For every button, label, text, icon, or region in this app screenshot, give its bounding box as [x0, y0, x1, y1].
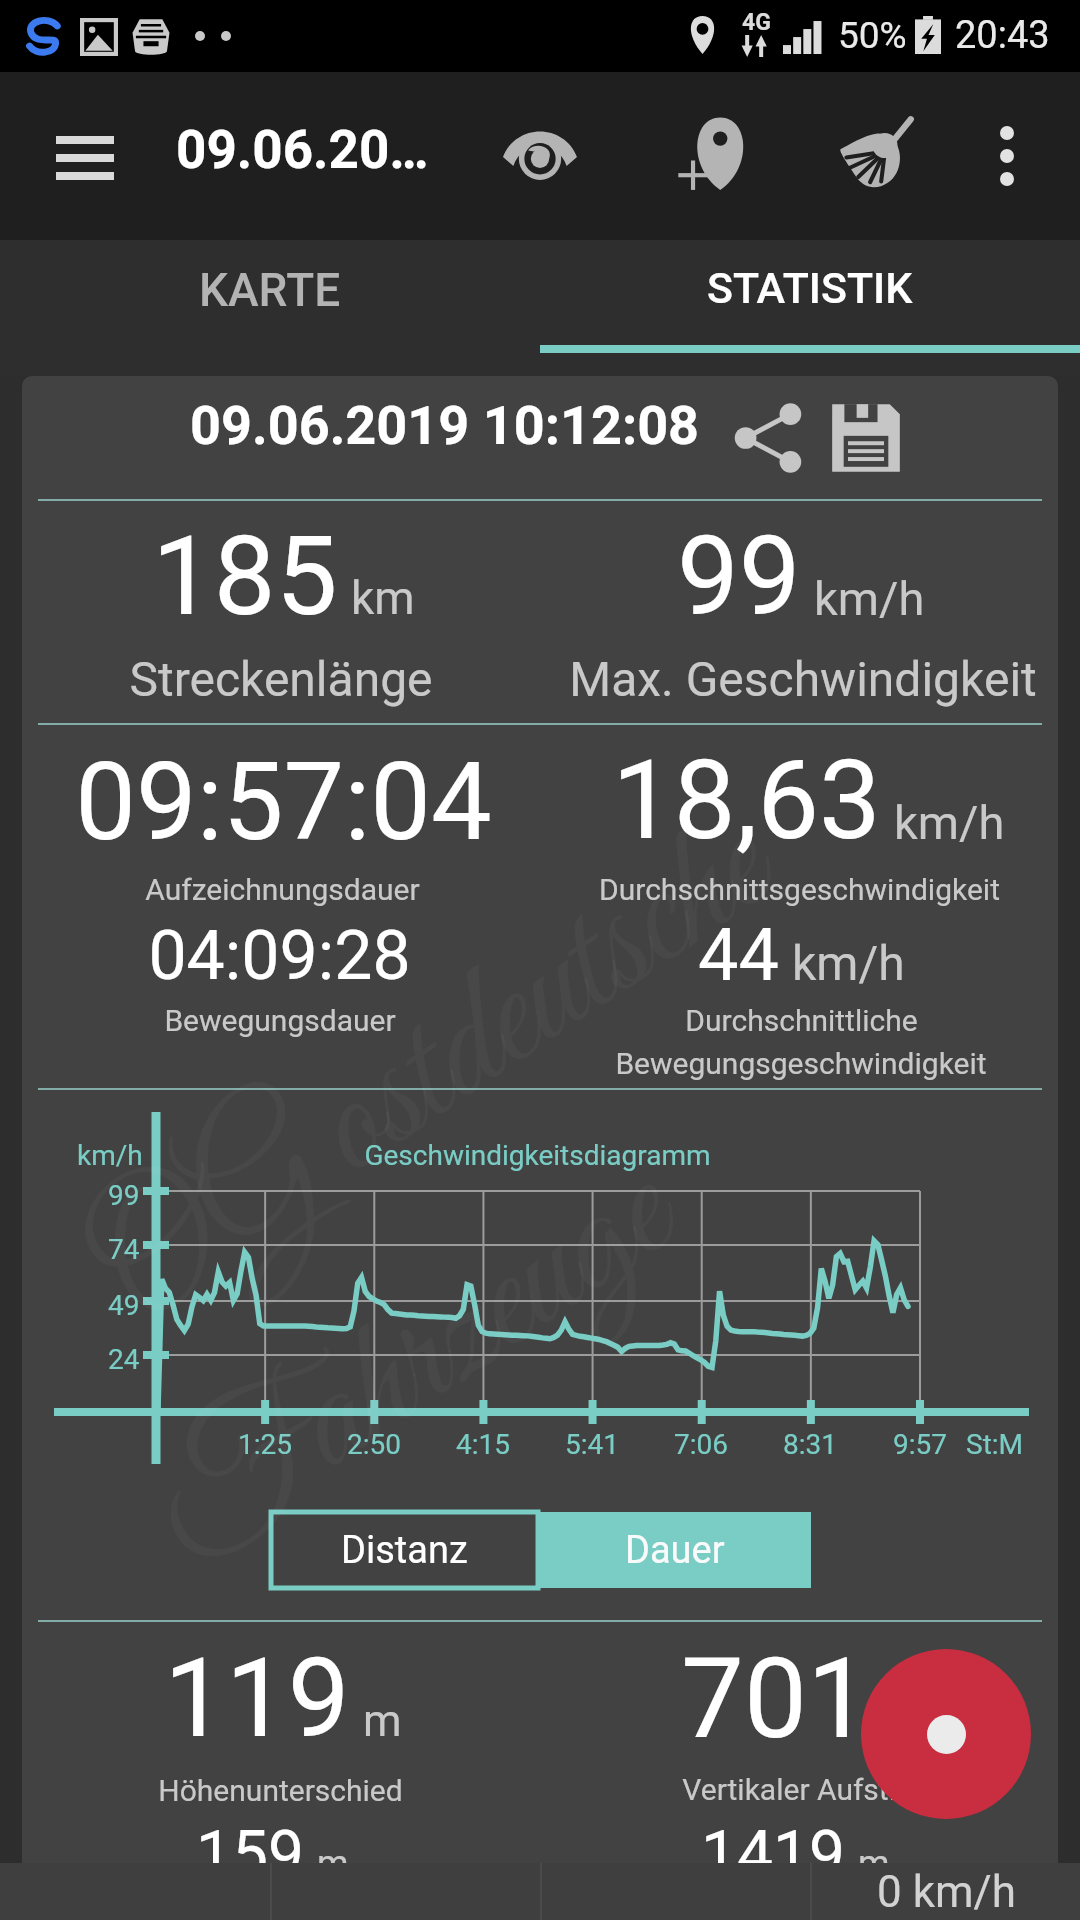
staticText: 5:41 [565, 1428, 619, 1461]
staticText: Geschwindigkeitsdiagramm [364, 1139, 711, 1172]
staticText: OG ostdeutsche [52, 772, 814, 1379]
button[interactable]: STATISTIK [540, 240, 1080, 376]
button[interactable]: Dauer [538, 1512, 811, 1588]
staticText: 8:31 [783, 1428, 837, 1461]
staticText: 99 [677, 512, 801, 641]
staticText: Dauer [625, 1528, 725, 1573]
staticText: 99 [108, 1179, 140, 1212]
staticText: 2:50 [347, 1428, 401, 1461]
staticText: KARTE [199, 263, 341, 317]
staticText: 9:57 [893, 1428, 947, 1461]
staticText: 49 [108, 1289, 140, 1322]
staticText: km/h [814, 571, 925, 626]
button[interactable]: Wegpunkt hinzufügen [648, 88, 772, 218]
staticText: 04:09:28 [148, 916, 411, 996]
staticText: 09:57:04 [75, 739, 492, 866]
staticText: St:M [966, 1428, 1024, 1461]
staticText: Streckenlänge [129, 651, 433, 707]
staticText: 44 [698, 913, 779, 997]
staticText: 24 [108, 1343, 140, 1376]
staticText: Durchschnittliche [685, 1003, 918, 1038]
staticText: 09.06.20… [176, 119, 429, 181]
staticText: 159 [196, 1817, 304, 1886]
button[interactable]: Teilen [720, 390, 816, 486]
staticText: Höhenunterschied [158, 1773, 403, 1808]
staticText: km/h [792, 935, 905, 991]
button[interactable]: Speichern [818, 390, 914, 486]
staticText: 74 [108, 1233, 140, 1266]
button[interactable]: Aufzeichnung starten [861, 1649, 1031, 1819]
staticText: 4:15 [456, 1428, 510, 1461]
staticText: Distanz [341, 1528, 468, 1573]
staticText: 18,63 [612, 736, 881, 865]
staticText: km/h [77, 1139, 143, 1172]
button[interactable]: Weitere Optionen [952, 93, 1062, 219]
button[interactable]: Distanz [271, 1512, 538, 1588]
staticText: Max. Geschwindigkeit [569, 651, 1037, 707]
staticText: 7:06 [674, 1428, 728, 1461]
button[interactable]: Sichtbarkeit umschalten [478, 91, 602, 221]
staticText: 4G [742, 9, 771, 36]
staticText: m [363, 1695, 402, 1747]
staticText: 09.06.2019 10:12:08 [190, 394, 700, 457]
staticText: 1419 [701, 1817, 845, 1886]
staticText: m [858, 1843, 890, 1885]
staticText: Fahrzeuge [112, 1118, 716, 1619]
staticText: Durchschnittsgeschwindigkeit [599, 872, 1000, 907]
button[interactable]: Navigationsmenü [20, 85, 150, 227]
staticText: m [317, 1843, 349, 1885]
staticText: 20:43 [955, 13, 1050, 58]
staticText: Bewegungsdauer [164, 1003, 396, 1038]
staticText: Aufzeichnungsdauer [145, 872, 420, 907]
staticText: Vertikaler Aufstieg [682, 1772, 929, 1807]
staticText: STATISTIK [707, 263, 913, 313]
button[interactable]: KARTE [0, 240, 540, 376]
staticText: km [351, 571, 415, 625]
button[interactable] [810, 1863, 1080, 1920]
staticText: 185 [152, 512, 338, 641]
staticText: km/h [894, 795, 1005, 850]
staticText: 119 [164, 1634, 350, 1763]
staticText: 1:25 [238, 1428, 292, 1461]
staticText: Bewegungsgeschwindigkeit [615, 1046, 987, 1081]
staticText: 701 [681, 1633, 870, 1764]
staticText: 0 km/h [877, 1866, 1016, 1918]
button[interactable]: Karte leeren [814, 89, 938, 219]
staticText: 50% [838, 14, 907, 57]
